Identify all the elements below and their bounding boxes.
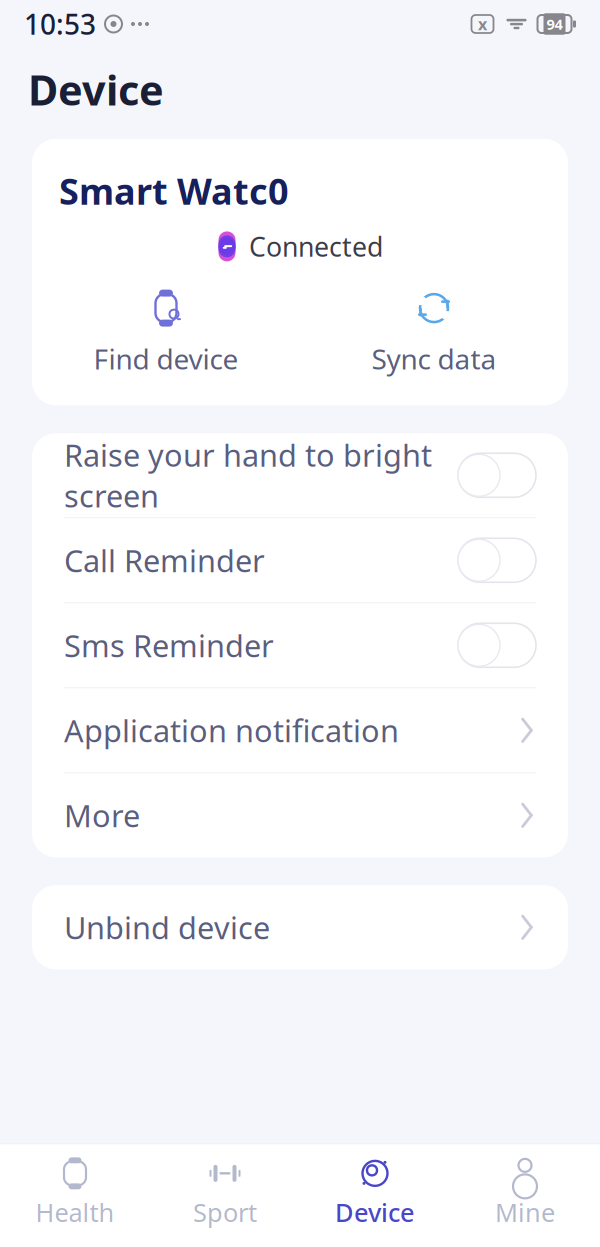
button[interactable]: Raise your hand to bright screen <box>32 433 568 517</box>
staticText: Sync data <box>371 340 496 377</box>
button[interactable]: More <box>32 773 568 857</box>
staticText: Health <box>35 1195 114 1229</box>
button[interactable]: Application notification <box>32 688 568 772</box>
button[interactable]: Sport <box>150 1156 300 1229</box>
button[interactable]: Find device <box>32 286 300 377</box>
staticText: Smart Watc0 <box>59 167 289 215</box>
button[interactable]: Mine <box>450 1156 600 1229</box>
staticText: Call Reminder <box>64 540 265 581</box>
staticText: x <box>478 13 487 35</box>
button[interactable]: Health <box>0 1156 150 1229</box>
button[interactable]: Unbind device <box>32 885 568 969</box>
staticText: Find device <box>93 340 238 377</box>
staticText: 94 <box>546 14 562 34</box>
button[interactable]: Sync data <box>300 286 568 377</box>
staticText: 10:53 <box>24 5 96 43</box>
staticText: More <box>64 795 140 836</box>
staticText: Unbind device <box>64 907 270 948</box>
staticText: Mine <box>495 1195 555 1229</box>
staticText: Application notification <box>64 710 399 751</box>
staticText: Connected <box>249 229 383 264</box>
button[interactable]: Device <box>300 1156 450 1229</box>
staticText: Sport <box>193 1195 257 1229</box>
staticText: Device <box>28 62 164 117</box>
button[interactable]: Call Reminder <box>32 518 568 602</box>
staticText: Sms Reminder <box>64 625 274 666</box>
button[interactable]: Sms Reminder <box>32 603 568 687</box>
staticText: Device <box>335 1195 415 1229</box>
staticText: Raise your hand to bright screen <box>64 435 432 516</box>
